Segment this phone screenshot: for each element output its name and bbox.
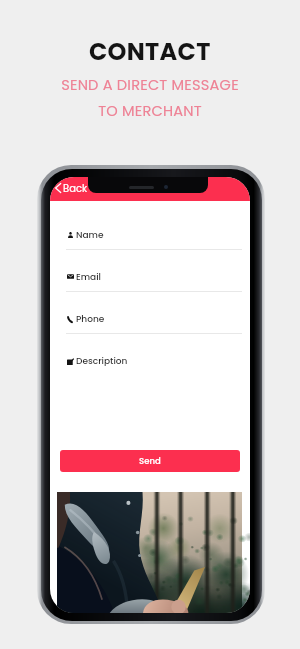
button[interactable]: Description [65,352,185,370]
button[interactable]: Send [60,450,240,472]
staticText: SEND A DIRECT MESSAGE TO MERCHANT [61,75,239,121]
staticText: Back [63,181,88,195]
button[interactable]: Back [53,180,91,196]
button[interactable]: Phone [65,310,185,328]
staticText: Phone [76,313,105,326]
staticText: Description [76,355,128,368]
staticText: Email [76,271,101,284]
button[interactable]: Name [65,226,185,244]
staticText: Send [139,455,161,467]
staticText: CONTACT [89,35,211,69]
button[interactable]: Email [65,268,185,286]
staticText: Name [76,229,104,242]
